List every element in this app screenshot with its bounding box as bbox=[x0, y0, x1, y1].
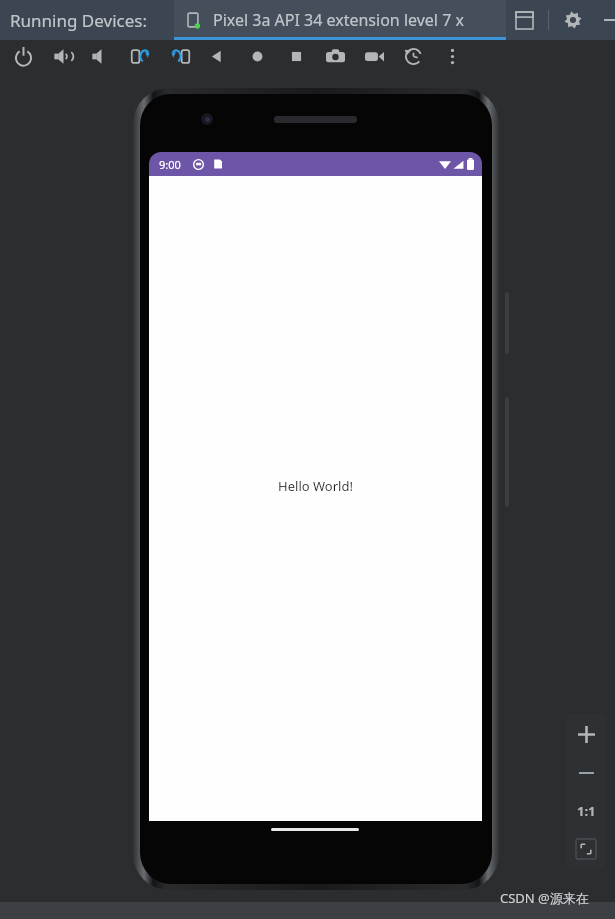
staticText: 9:00 bbox=[159, 157, 181, 172]
button[interactable]: Power bbox=[8, 41, 38, 71]
button[interactable]: Back bbox=[201, 41, 231, 71]
staticText: Running Devices: bbox=[10, 9, 147, 32]
staticText: 1:1 bbox=[577, 802, 596, 820]
button[interactable]: Volume up bbox=[48, 41, 78, 71]
button[interactable]: Minimize bbox=[598, 8, 615, 32]
button[interactable]: Zoom out bbox=[566, 754, 606, 792]
button[interactable]: Rotate bbox=[398, 41, 428, 71]
button[interactable]: Overview bbox=[281, 41, 311, 71]
button[interactable]: Zoom in bbox=[566, 714, 606, 754]
staticText: Pixel 3a API 34 extension level 7 x bbox=[213, 9, 464, 31]
button[interactable]: Rotate right bbox=[165, 41, 195, 71]
button[interactable]: Settings bbox=[561, 8, 585, 32]
button[interactable]: More bbox=[437, 41, 467, 71]
button[interactable]: Zoom to actual size bbox=[566, 792, 606, 830]
staticText: CSDN @源来在 bbox=[500, 889, 589, 907]
button[interactable]: Screenshot bbox=[320, 41, 350, 71]
button[interactable]: Pixel 3a API 34 extension level 7 x bbox=[174, 0, 506, 40]
button[interactable]: Rotate left bbox=[125, 41, 155, 71]
button[interactable]: Home bbox=[242, 41, 272, 71]
staticText: Hello World! bbox=[278, 477, 353, 495]
button[interactable]: Volume down bbox=[86, 41, 116, 71]
button[interactable]: Restore window bbox=[512, 8, 536, 32]
button[interactable]: Record screen bbox=[359, 41, 389, 71]
button[interactable]: Zoom to fit bbox=[566, 830, 606, 868]
